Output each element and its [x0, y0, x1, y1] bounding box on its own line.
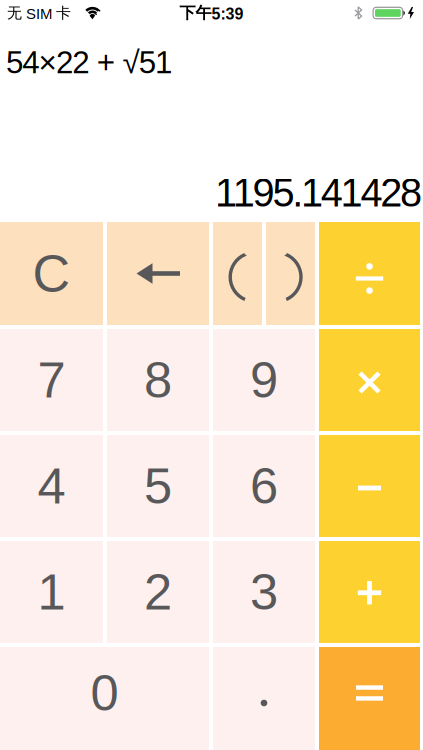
staticText: 54×22 + √51 — [6, 45, 172, 80]
staticText: C — [32, 244, 70, 303]
staticText: 8 — [144, 352, 172, 408]
button[interactable]: C — [0, 222, 103, 325]
button[interactable]: 1 — [0, 541, 103, 643]
button[interactable]: 2 — [107, 541, 209, 643]
button[interactable]: Equals — [319, 647, 420, 750]
button[interactable]: 5 — [107, 435, 209, 537]
button[interactable]: Backspace — [107, 222, 209, 325]
staticText: 1195.141428 — [215, 171, 422, 215]
staticText: 9 — [250, 352, 278, 408]
button[interactable]: Multiply — [319, 329, 420, 431]
button[interactable]: 7 — [0, 329, 103, 431]
button[interactable]: 8 — [107, 329, 209, 431]
button[interactable]: Minus — [319, 435, 420, 537]
button[interactable]: Open bracket — [213, 222, 262, 325]
button[interactable]: Close bracket — [266, 222, 315, 325]
button[interactable]: Divide — [319, 222, 420, 325]
staticText: 5 — [144, 458, 172, 514]
staticText: 1 — [37, 564, 65, 620]
button[interactable]: 3 — [213, 541, 315, 643]
button[interactable]: 9 — [213, 329, 315, 431]
button[interactable]: Decimal point — [213, 647, 315, 750]
staticText: 4 — [37, 458, 65, 514]
button[interactable]: Plus — [319, 541, 420, 643]
staticText: 7 — [37, 352, 65, 408]
button[interactable]: 4 — [0, 435, 103, 537]
button[interactable]: 0 — [0, 647, 209, 750]
staticText: 3 — [250, 564, 278, 620]
staticText: 下午5:39 — [179, 3, 243, 23]
staticText: 0 — [90, 665, 118, 721]
staticText: 6 — [250, 458, 278, 514]
button[interactable]: 6 — [213, 435, 315, 537]
staticText: 2 — [144, 564, 172, 620]
staticText: 无 SIM 卡 — [7, 4, 71, 22]
